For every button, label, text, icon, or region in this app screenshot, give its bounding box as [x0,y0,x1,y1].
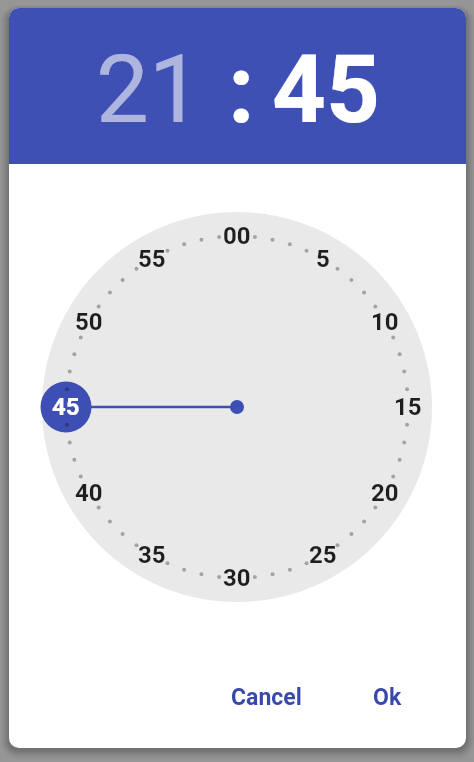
staticText: 45 [52,393,80,421]
staticText: 35 [138,541,166,569]
staticText: 5 [316,245,330,273]
staticText: 15 [394,393,422,421]
staticText: 10 [371,308,399,336]
staticText: Cancel [231,684,302,711]
staticText: 30 [223,564,251,592]
staticText: 25 [309,541,337,569]
staticText: 40 [75,479,103,507]
staticText: 50 [75,308,103,336]
staticText: 00 [223,222,251,250]
staticText: : [228,35,255,145]
button[interactable]: Cancel [206,673,326,721]
button[interactable]: 45 [272,35,380,145]
staticText: 20 [371,479,399,507]
staticText: Ok [373,684,402,711]
button[interactable]: Ok [342,673,432,721]
button[interactable]: 21 [96,35,202,145]
staticText: 55 [138,245,166,273]
